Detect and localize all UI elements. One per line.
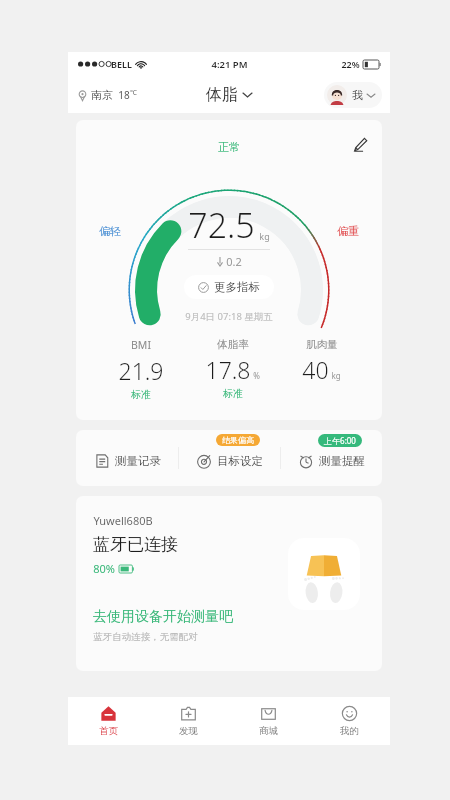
staticText: 我 — [352, 88, 363, 102]
staticText: 80% — [93, 561, 115, 576]
button[interactable]: 更多指标 — [184, 275, 274, 299]
staticText: 偏轻 — [99, 224, 121, 238]
staticText: 发现 — [179, 725, 198, 737]
staticText: 9月4日 07:18 星期五 — [185, 310, 273, 323]
staticText: 去使用设备开始测量吧 — [93, 608, 233, 626]
button[interactable]: BMI — [112, 338, 170, 401]
button[interactable]: Yuwell680B — [76, 496, 382, 671]
staticText: 4:21 PM — [211, 58, 248, 71]
staticText: 21.9 — [118, 355, 164, 386]
button[interactable]: 体脂 — [206, 85, 252, 105]
staticText: 更多指标 — [214, 280, 260, 294]
staticText: 上午6:00 — [324, 435, 356, 446]
staticText: 40 — [302, 354, 329, 385]
staticText: 18 — [118, 88, 130, 102]
button[interactable]: 发现 — [148, 697, 228, 745]
staticText: 测量记录 — [115, 454, 161, 468]
button[interactable]: 肌肉量 — [296, 338, 347, 401]
staticText: 体脂率 — [217, 338, 249, 351]
staticText: 偏重 — [337, 224, 359, 238]
staticText: kg — [331, 370, 341, 381]
staticText: 蓝牙自动连接，无需配对 — [93, 631, 198, 643]
staticText: 体脂 — [206, 85, 238, 105]
staticText: 标准 — [223, 387, 243, 400]
staticText: 目标设定 — [217, 454, 263, 468]
staticText: 正常 — [218, 140, 240, 154]
staticText: ℃ — [130, 88, 137, 98]
staticText: 我的 — [340, 725, 359, 737]
button[interactable]: 商城 — [228, 697, 309, 745]
button[interactable]: 测量提醒 — [281, 430, 382, 486]
staticText: 蓝牙已连接 — [93, 534, 178, 555]
button[interactable]: 我的 — [309, 697, 390, 745]
button[interactable]: 测量记录 — [76, 430, 178, 486]
staticText: 南京 — [91, 88, 113, 102]
staticText: 肌肉量 — [306, 338, 338, 351]
button[interactable]: 首页 — [68, 697, 148, 745]
staticText: 测量提醒 — [319, 454, 365, 468]
staticText: 首页 — [99, 725, 118, 737]
staticText: 72.5 — [188, 202, 255, 248]
staticText: 标准 — [131, 388, 151, 401]
staticText: 22% — [341, 58, 360, 70]
staticText: BMI — [131, 338, 151, 352]
staticText: % — [253, 370, 260, 381]
button[interactable]: Edit — [348, 132, 372, 156]
button[interactable]: 我 — [324, 82, 382, 108]
staticText: BELL — [111, 58, 132, 70]
button[interactable]: 目标设定 — [179, 430, 280, 486]
staticText: Yuwell680B — [93, 513, 153, 528]
staticText: 结果偏高 — [222, 435, 254, 445]
staticText: 商城 — [259, 725, 278, 737]
staticText: 0.2 — [226, 254, 242, 269]
staticText: 17.8 — [205, 354, 251, 385]
staticText: kg — [259, 230, 270, 242]
button[interactable]: 体脂率 — [199, 338, 266, 400]
button[interactable]: 南京 — [77, 88, 137, 102]
